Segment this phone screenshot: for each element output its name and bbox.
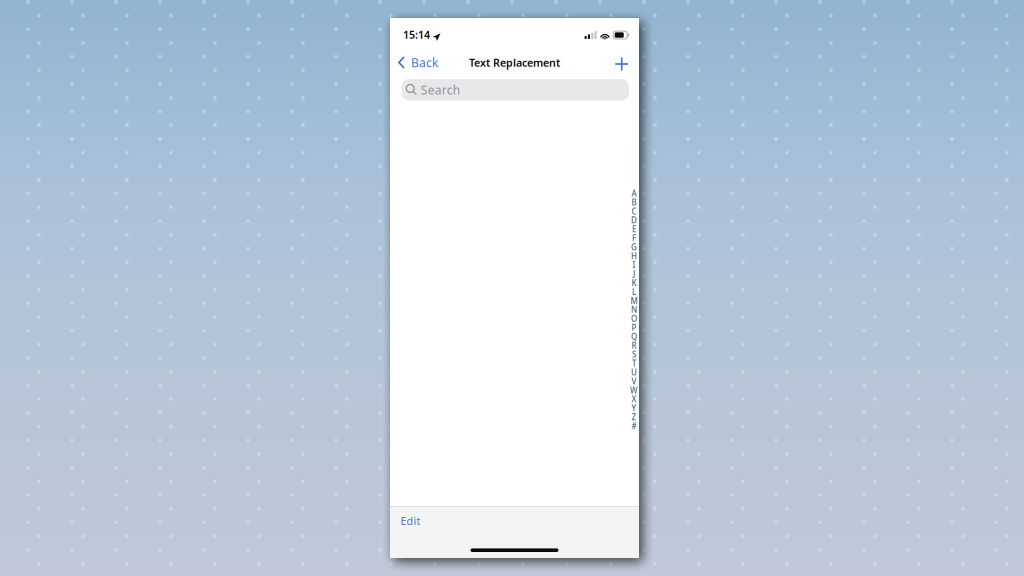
button[interactable]: Back [390, 48, 444, 76]
staticText: K [631, 278, 636, 288]
staticText: X [631, 394, 636, 404]
staticText: S [632, 349, 636, 360]
button[interactable]: Add [606, 49, 636, 76]
staticText: Search [421, 82, 460, 98]
staticText: Q [631, 331, 637, 342]
staticText: P [631, 322, 636, 333]
staticText: U [631, 367, 637, 378]
staticText: V [631, 376, 636, 387]
button[interactable]: Search [401, 79, 629, 100]
staticText: A [631, 188, 636, 199]
staticText: G [631, 242, 637, 252]
staticText: Back [411, 54, 438, 70]
staticText: R [631, 340, 636, 351]
button[interactable]: Section index [624, 185, 639, 426]
staticText: L [632, 286, 636, 297]
staticText: E [632, 224, 636, 234]
staticText: M [630, 295, 637, 306]
staticText: F [632, 233, 636, 243]
staticText: W [630, 385, 638, 396]
staticText: Text Replacement [469, 55, 560, 70]
staticText: Z [631, 412, 636, 422]
staticText: D [631, 215, 637, 225]
staticText: O [631, 313, 637, 324]
staticText: T [632, 358, 636, 369]
staticText: I [632, 260, 635, 270]
staticText: Y [631, 403, 636, 413]
staticText: J [633, 269, 635, 279]
staticText: Edit [400, 514, 420, 528]
staticText: 15:14 [403, 27, 430, 42]
staticText: # [631, 421, 636, 431]
staticText: H [631, 251, 637, 261]
button[interactable]: Edit [390, 509, 430, 533]
staticText: C [631, 206, 636, 217]
staticText: B [631, 197, 636, 208]
staticText: N [631, 304, 637, 315]
